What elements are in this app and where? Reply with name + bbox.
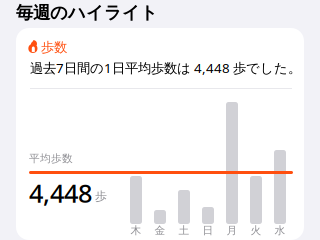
staticText: 土: [178, 224, 189, 237]
staticText: 水: [274, 224, 285, 237]
staticText: 毎週のハイライト: [16, 2, 158, 23]
staticText: 火: [250, 224, 261, 237]
staticText: 月: [226, 224, 237, 237]
staticText: 歩数: [41, 39, 67, 55]
staticText: 金: [154, 224, 165, 237]
staticText: 過去7日間の1日平均歩数は 4,448 歩でした。: [30, 59, 301, 77]
staticText: 木: [130, 224, 141, 237]
staticText: 日: [202, 224, 213, 237]
staticText: 平均歩数: [29, 152, 73, 165]
staticText: 4,448: [29, 176, 92, 210]
staticText: 歩: [95, 189, 107, 204]
